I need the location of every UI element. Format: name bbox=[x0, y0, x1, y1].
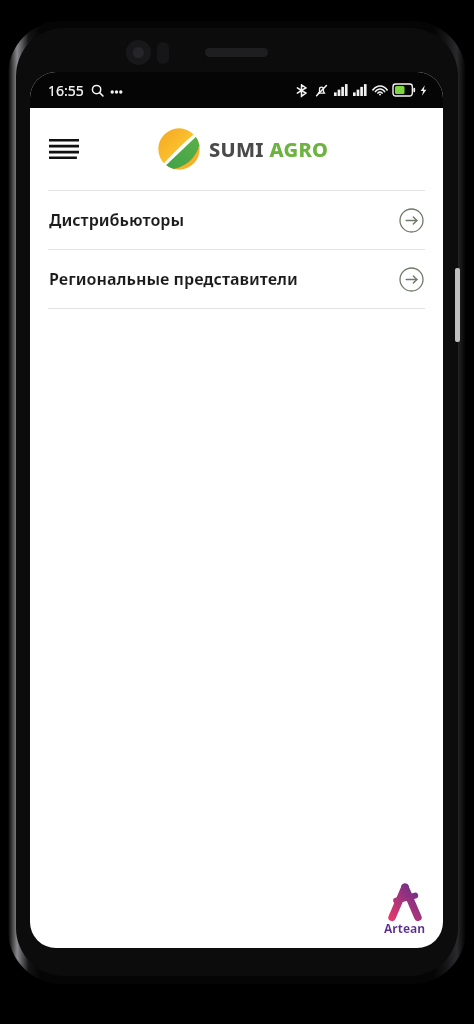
button[interactable]: Дистрибьюторы bbox=[30, 191, 443, 249]
staticText: Artean bbox=[384, 920, 426, 936]
button[interactable]: SUMI AGRO bbox=[157, 127, 329, 171]
button[interactable]: Artean bbox=[384, 886, 426, 936]
staticText: SUMI AGRO bbox=[209, 136, 329, 163]
button[interactable]: Menu bbox=[42, 127, 86, 171]
staticText: 16:55 bbox=[48, 81, 84, 100]
staticText: Региональные представители bbox=[49, 268, 399, 290]
button[interactable]: Региональные представители bbox=[30, 250, 443, 308]
staticText: Дистрибьюторы bbox=[49, 209, 399, 231]
